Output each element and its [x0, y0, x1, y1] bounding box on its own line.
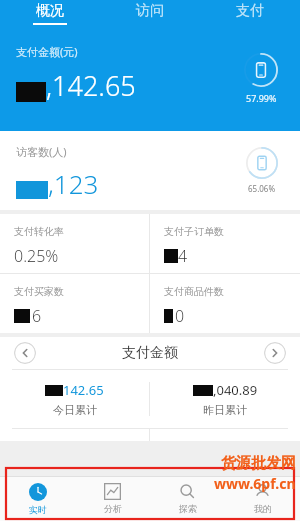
staticText: ,142.65	[46, 67, 136, 104]
staticText: 访客数(人)	[16, 144, 67, 159]
staticText: 访问	[136, 2, 164, 20]
staticText: 今日累计	[53, 403, 97, 417]
staticText: ,123	[48, 166, 99, 201]
staticText: 支付转化率	[14, 225, 64, 238]
staticText: 142.65	[63, 381, 104, 399]
staticText: 支付金额	[36, 344, 264, 362]
staticText: 概况	[36, 2, 64, 20]
staticText: 实时	[29, 504, 47, 515]
staticText: ,040.89	[213, 381, 258, 399]
button[interactable]: 支付子订单数	[150, 214, 300, 273]
button[interactable]: 142.65	[0, 370, 149, 428]
staticText: 6	[32, 305, 42, 327]
button[interactable]: 访客数(人)	[0, 131, 300, 210]
button[interactable]: 探索	[150, 476, 225, 521]
button[interactable]: 概况	[0, 0, 100, 26]
button[interactable]: ,040.89	[150, 370, 300, 428]
staticText: 57.99%	[246, 92, 277, 104]
button[interactable]: 下一个指标	[264, 342, 286, 364]
button[interactable]: 支付转化率	[0, 214, 149, 273]
staticText: 支付买家数	[14, 285, 64, 298]
button[interactable]: 支付金额(元)	[0, 26, 300, 131]
staticText: 支付子订单数	[164, 225, 224, 238]
staticText: 65.06%	[248, 183, 276, 194]
button[interactable]: 我的	[225, 476, 300, 521]
staticText: 0.25%	[14, 245, 59, 267]
button[interactable]: 分析	[75, 476, 150, 521]
button[interactable]: 访问	[100, 0, 200, 26]
button[interactable]: 上一个指标	[14, 342, 36, 364]
staticText: 支付商品件数	[164, 285, 224, 298]
button[interactable]: 支付	[200, 0, 300, 26]
button[interactable]: 支付商品件数	[150, 274, 300, 333]
staticText: www.6pf.cn	[214, 474, 296, 493]
staticText: 支付	[236, 2, 264, 20]
staticText: 昨日累计	[203, 403, 247, 417]
staticText: 0	[175, 305, 185, 327]
button[interactable]: 支付买家数	[0, 274, 149, 333]
staticText: 支付金额(元)	[16, 44, 78, 59]
staticText: 4	[178, 245, 188, 267]
staticText: 我的	[254, 503, 272, 514]
staticText: 分析	[104, 503, 122, 514]
button[interactable]: 实时	[0, 476, 75, 521]
staticText: 货源批发网	[221, 454, 296, 473]
staticText: 探索	[179, 503, 197, 514]
